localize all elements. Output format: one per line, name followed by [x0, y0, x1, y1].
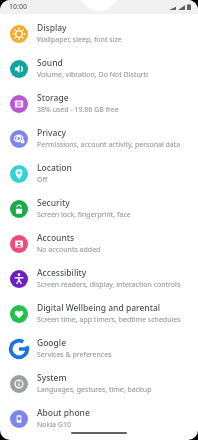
staticText: Screen lock, fingerprint, face	[37, 210, 131, 220]
staticText: Volume, vibration, Do Not Disturb	[37, 70, 148, 80]
staticText: Accessibility	[37, 267, 87, 279]
staticText: Screen time, app timers, bedtime schedul…	[37, 315, 181, 325]
staticText: 10:00	[9, 2, 27, 12]
staticText: Off	[37, 175, 48, 185]
button[interactable]: Location	[0, 156, 198, 191]
button[interactable]: Digital Wellbeing and parental controls	[0, 296, 198, 331]
staticText: Permissions, account activity, personal …	[37, 140, 181, 150]
staticText: Digital Wellbeing and parental controls	[37, 302, 190, 314]
staticText: 38% used - 19.86 GB free	[37, 105, 119, 115]
staticText: Nokia G10	[37, 420, 71, 430]
staticText: About phone	[37, 407, 90, 419]
staticText: Security	[37, 197, 70, 209]
staticText: Display	[37, 22, 67, 34]
staticText: Google	[37, 337, 67, 349]
button[interactable]: System	[0, 366, 198, 401]
staticText: Screen readers, display, interaction con…	[37, 280, 181, 290]
staticText: No accounts added	[37, 245, 101, 255]
staticText: Privacy	[37, 127, 67, 139]
button[interactable]: Google	[0, 331, 198, 366]
button[interactable]: Privacy	[0, 121, 198, 156]
staticText: System	[37, 372, 67, 384]
staticText: Services & preferences	[37, 350, 112, 360]
button[interactable]: Sound	[0, 51, 198, 86]
staticText: Accounts	[37, 232, 75, 244]
button[interactable]: About phone	[0, 401, 198, 436]
button[interactable]: Accessibility	[0, 261, 198, 296]
staticText: Languages, gestures, time, backup	[37, 385, 152, 395]
button[interactable]: Storage	[0, 86, 198, 121]
staticText: Sound	[37, 57, 63, 69]
staticText: Storage	[37, 92, 69, 104]
button[interactable]: Display	[0, 16, 198, 51]
button[interactable]: Security	[0, 191, 198, 226]
button[interactable]: Accounts	[0, 226, 198, 261]
staticText: Wallpaper, sleep, font size	[37, 35, 122, 45]
staticText: Location	[37, 162, 72, 174]
